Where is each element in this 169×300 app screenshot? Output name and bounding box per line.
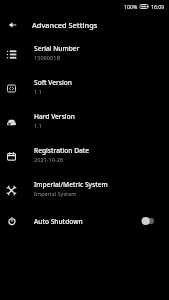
staticText: Imperial/Metric System xyxy=(34,180,108,189)
button[interactable]: Hard Version xyxy=(0,104,169,138)
button[interactable]: Soft Version xyxy=(0,70,169,104)
staticText: 100% xyxy=(124,3,138,10)
staticText: Registration Date xyxy=(34,146,90,155)
button[interactable]: Serial Number xyxy=(0,36,169,70)
button[interactable]: Auto Shutdown xyxy=(0,206,169,240)
staticText: Serial Number xyxy=(34,44,80,53)
staticText: 2021-10-26 xyxy=(34,156,64,164)
staticText: Auto Shutdown xyxy=(34,217,83,226)
staticText: Soft Version xyxy=(34,78,72,87)
staticText: Hard Version xyxy=(34,112,75,121)
button[interactable]: Registration Date xyxy=(0,138,169,172)
button[interactable]: Back xyxy=(0,14,24,36)
staticText: 1.1 xyxy=(34,122,42,130)
button[interactable]: Imperial/Metric System xyxy=(0,172,169,206)
staticText: 1.1 xyxy=(34,88,42,96)
staticText: Advanced Settings xyxy=(32,20,98,30)
staticText: Imperial System xyxy=(34,190,77,198)
staticText: 1509001B xyxy=(34,54,61,62)
staticText: 16:09 xyxy=(151,3,165,10)
